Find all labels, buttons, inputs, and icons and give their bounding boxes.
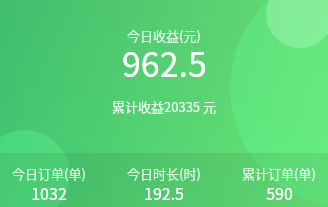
staticText: 590 (266, 181, 293, 204)
button[interactable]: 今日订单(单) (12, 153, 86, 207)
button[interactable]: 累计订单(单) (242, 153, 316, 207)
staticText: 1032 (31, 181, 67, 204)
staticText: 累计订单(单) (242, 164, 316, 183)
staticText: 累计收益20335 元 (112, 97, 216, 116)
staticText: 今日订单(单) (12, 164, 86, 183)
staticText: 192.5 (144, 181, 184, 204)
button[interactable]: 今日时长(时) (127, 153, 201, 207)
staticText: 今日时长(时) (127, 164, 201, 183)
staticText: 今日收益(元) (127, 26, 201, 45)
staticText: 962.5 (122, 38, 207, 87)
